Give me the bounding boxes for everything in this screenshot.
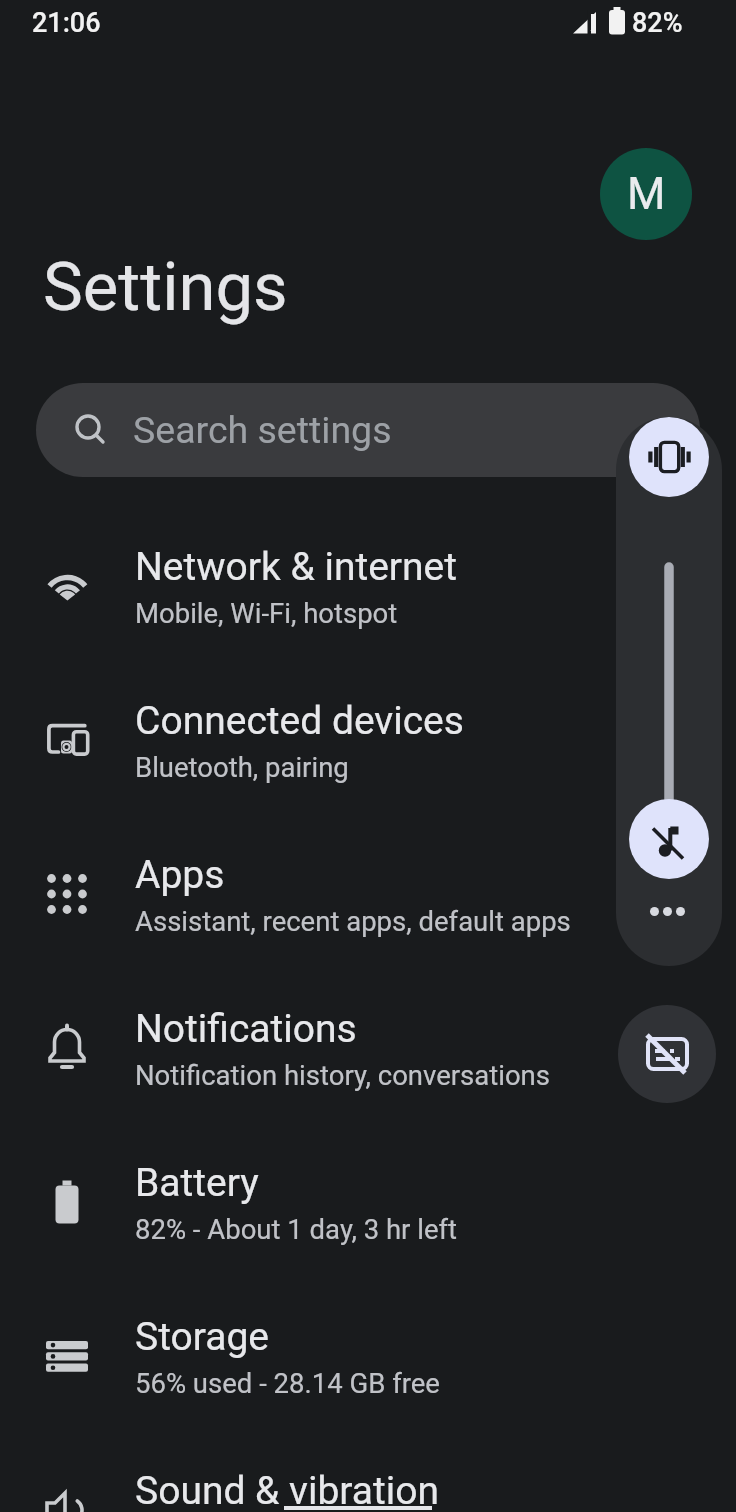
staticText: 82% - About 1 day, 3 hr left bbox=[135, 1213, 458, 1245]
staticText: Search settings bbox=[133, 408, 392, 452]
staticText: Storage bbox=[135, 1314, 270, 1360]
button[interactable]: Sound & vibration bbox=[0, 1433, 610, 1512]
staticText: 21:06 bbox=[32, 7, 101, 39]
staticText: Settings bbox=[43, 248, 288, 327]
button[interactable] bbox=[618, 1005, 716, 1103]
staticText: Battery bbox=[135, 1160, 259, 1206]
staticText: Notifications bbox=[135, 1006, 357, 1052]
button[interactable]: Storage bbox=[0, 1279, 610, 1433]
staticText: Mobile, Wi-Fi, hotspot bbox=[135, 597, 398, 629]
button[interactable] bbox=[647, 887, 695, 935]
button[interactable]: Battery bbox=[0, 1125, 610, 1279]
staticText: Notification history, conversations bbox=[135, 1059, 550, 1091]
staticText: Assistant, recent apps, default apps bbox=[135, 905, 571, 937]
staticText: M bbox=[627, 168, 666, 220]
staticText: 56% used - 28.14 GB free bbox=[135, 1367, 440, 1399]
staticText: Network & internet bbox=[135, 544, 458, 590]
button[interactable] bbox=[629, 417, 709, 497]
staticText: Connected devices bbox=[135, 698, 464, 744]
staticText: Apps bbox=[135, 852, 225, 898]
button[interactable]: Notifications bbox=[0, 971, 610, 1125]
button[interactable]: Search settings bbox=[36, 383, 700, 477]
staticText: 82% bbox=[632, 7, 683, 39]
staticText: Sound & vibration bbox=[135, 1468, 440, 1512]
staticText: Bluetooth, pairing bbox=[135, 751, 349, 783]
button[interactable] bbox=[629, 799, 709, 879]
button[interactable]: Connected devices bbox=[0, 663, 610, 817]
button[interactable]: M bbox=[600, 148, 692, 240]
button[interactable]: Apps bbox=[0, 817, 610, 971]
button[interactable]: Network & internet bbox=[0, 509, 610, 663]
